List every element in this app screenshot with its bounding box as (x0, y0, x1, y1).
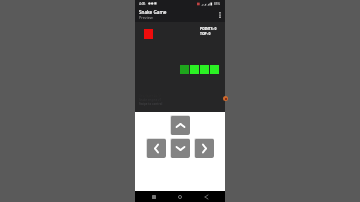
button[interactable]: Recents (147, 191, 161, 202)
button[interactable]: Back (199, 191, 213, 202)
button[interactable]: Right (194, 138, 214, 158)
staticText: Preview (139, 15, 153, 20)
button[interactable]: Start game (223, 96, 228, 101)
staticText: Snake Game (139, 9, 167, 15)
staticText: 85% (214, 2, 220, 6)
staticText: TOP: 0 (200, 31, 211, 36)
button[interactable]: Home (173, 191, 187, 202)
staticText: Swipe to control (139, 102, 163, 106)
button[interactable]: Left (146, 138, 166, 158)
staticText: 4:05 (139, 2, 146, 6)
button[interactable]: Up (170, 115, 190, 135)
staticText: POINTS: 0 (200, 26, 217, 31)
button[interactable]: Down (170, 138, 190, 158)
button[interactable]: More options (214, 9, 225, 20)
